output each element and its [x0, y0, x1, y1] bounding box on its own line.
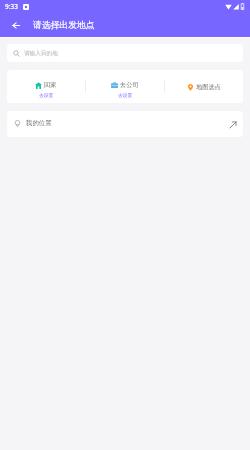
staticText: 请选择出发地点: [33, 20, 95, 31]
staticText: 地图选点: [196, 83, 221, 91]
staticText: 去公司: [120, 81, 139, 89]
staticText: 回家: [44, 81, 57, 89]
button[interactable]: Back: [0, 14, 27, 37]
button[interactable]: 回家: [7, 70, 85, 103]
button[interactable]: Use current location: [229, 121, 237, 129]
staticText: 我的位置: [26, 119, 52, 127]
staticText: 9:33: [5, 2, 18, 11]
button[interactable]: 去公司: [86, 70, 164, 103]
staticText: 去设置: [118, 92, 133, 98]
staticText: 去设置: [39, 92, 54, 98]
button[interactable]: 请输入目的地: [7, 44, 243, 62]
button[interactable]: 地图选点: [165, 70, 243, 103]
button[interactable]: 我的位置: [7, 111, 243, 137]
staticText: 请输入目的地: [24, 50, 58, 57]
